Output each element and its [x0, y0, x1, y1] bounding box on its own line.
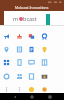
button[interactable]: Survey — [13, 43, 26, 56]
button[interactable]: Star — [25, 83, 38, 96]
button[interactable]: Team — [13, 70, 26, 83]
button[interactable]: Quiz — [38, 56, 51, 69]
button[interactable]: Location — [0, 43, 13, 56]
button[interactable]: Wishes — [13, 30, 26, 43]
button[interactable]: Broadcast — [0, 30, 13, 43]
button[interactable]: Chat — [25, 56, 38, 69]
button[interactable]: Photos — [38, 70, 51, 83]
button[interactable]: Rewards — [38, 30, 51, 43]
button[interactable]: Home — [29, 94, 35, 100]
staticText: bcast — [23, 15, 37, 22]
button[interactable]: Ideas — [38, 43, 51, 56]
button[interactable]: Sun — [38, 83, 51, 96]
button[interactable]: Recents — [47, 94, 53, 100]
button[interactable]: Gallery — [25, 30, 38, 43]
button[interactable]: Tasks — [13, 56, 26, 69]
button[interactable]: Back — [12, 94, 18, 100]
staticText: Star — [29, 94, 34, 96]
button[interactable]: Info — [13, 83, 26, 96]
button[interactable]: More — [0, 83, 13, 96]
button[interactable]: Help — [0, 70, 13, 83]
button[interactable]: Training — [0, 56, 13, 69]
staticText: m — [13, 15, 19, 22]
button[interactable]: Notes — [25, 70, 38, 83]
staticText: Mobcast Innovations — [15, 5, 49, 10]
button[interactable]: Docs — [25, 43, 38, 56]
